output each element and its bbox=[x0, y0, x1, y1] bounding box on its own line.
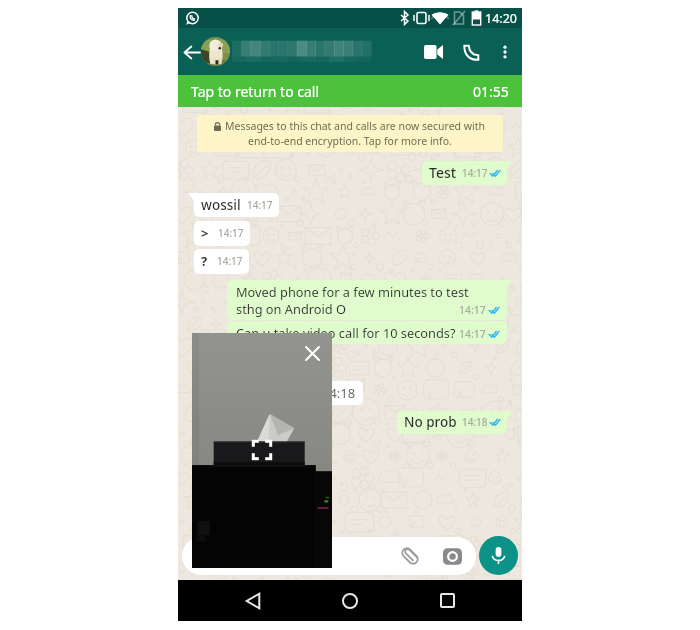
button[interactable]: Home bbox=[330, 580, 370, 621]
staticText: 14:20 bbox=[485, 10, 517, 27]
staticText: sthg on Android O bbox=[236, 300, 347, 317]
staticText: end-to-end encryption. Tap for more info… bbox=[248, 134, 452, 148]
button[interactable]: Contact profile photo bbox=[201, 37, 230, 66]
button[interactable]: Moved phone for a few minutes to test bbox=[227, 280, 507, 320]
button[interactable]: wossil bbox=[194, 193, 279, 217]
button[interactable]: 14:18 bbox=[208, 381, 363, 405]
button[interactable]: ? bbox=[194, 249, 249, 274]
staticText: Tap to return to call bbox=[191, 82, 320, 101]
button[interactable]: Close video call bbox=[298, 339, 326, 367]
staticText: 14:18 bbox=[322, 384, 356, 402]
staticText: 14:17 bbox=[459, 303, 486, 317]
staticText: 14:18 bbox=[462, 415, 488, 429]
button[interactable]: Close video call bbox=[192, 333, 332, 568]
button[interactable]: Record voice message bbox=[479, 536, 518, 575]
staticText: 14:17 bbox=[218, 226, 244, 240]
staticText: 14:17 bbox=[247, 198, 273, 212]
button[interactable]: More options bbox=[490, 37, 520, 67]
staticText: 01:55 bbox=[473, 82, 509, 101]
staticText: 14:17 bbox=[459, 327, 486, 341]
staticText: Messages to this chat and calls are now … bbox=[225, 119, 486, 133]
button[interactable]: Messages to this chat and calls are now … bbox=[197, 115, 503, 152]
button[interactable]: Can u take video call for 10 seconds? bbox=[227, 321, 507, 344]
staticText: Moved phone for a few minutes to test bbox=[236, 283, 469, 300]
staticText: Can u take video call for 10 seconds? bbox=[236, 324, 456, 341]
button[interactable]: Recent apps bbox=[427, 580, 467, 621]
button[interactable]: Expand video call bbox=[250, 438, 274, 462]
button[interactable]: No prob bbox=[397, 411, 507, 434]
staticText: No prob bbox=[404, 413, 457, 431]
staticText: wossil bbox=[201, 196, 241, 214]
staticText: ? bbox=[201, 252, 208, 270]
button[interactable]: Video call bbox=[414, 33, 452, 71]
button[interactable]: Tap to return to call bbox=[178, 75, 522, 107]
button[interactable]: Back bbox=[179, 39, 205, 65]
button[interactable]: Attach file bbox=[182, 537, 476, 575]
button[interactable] bbox=[232, 40, 371, 62]
button[interactable]: Attach file bbox=[396, 542, 424, 570]
staticText: 14:17 bbox=[462, 166, 488, 180]
button[interactable]: Camera bbox=[438, 542, 466, 570]
staticText: 14:17 bbox=[217, 254, 243, 268]
button[interactable]: Voice call bbox=[452, 33, 490, 71]
button[interactable]: > bbox=[194, 221, 250, 246]
staticText: Test bbox=[429, 163, 457, 182]
button[interactable]: Back bbox=[233, 580, 273, 621]
button[interactable]: Test bbox=[422, 161, 507, 185]
staticText: > bbox=[201, 224, 209, 242]
